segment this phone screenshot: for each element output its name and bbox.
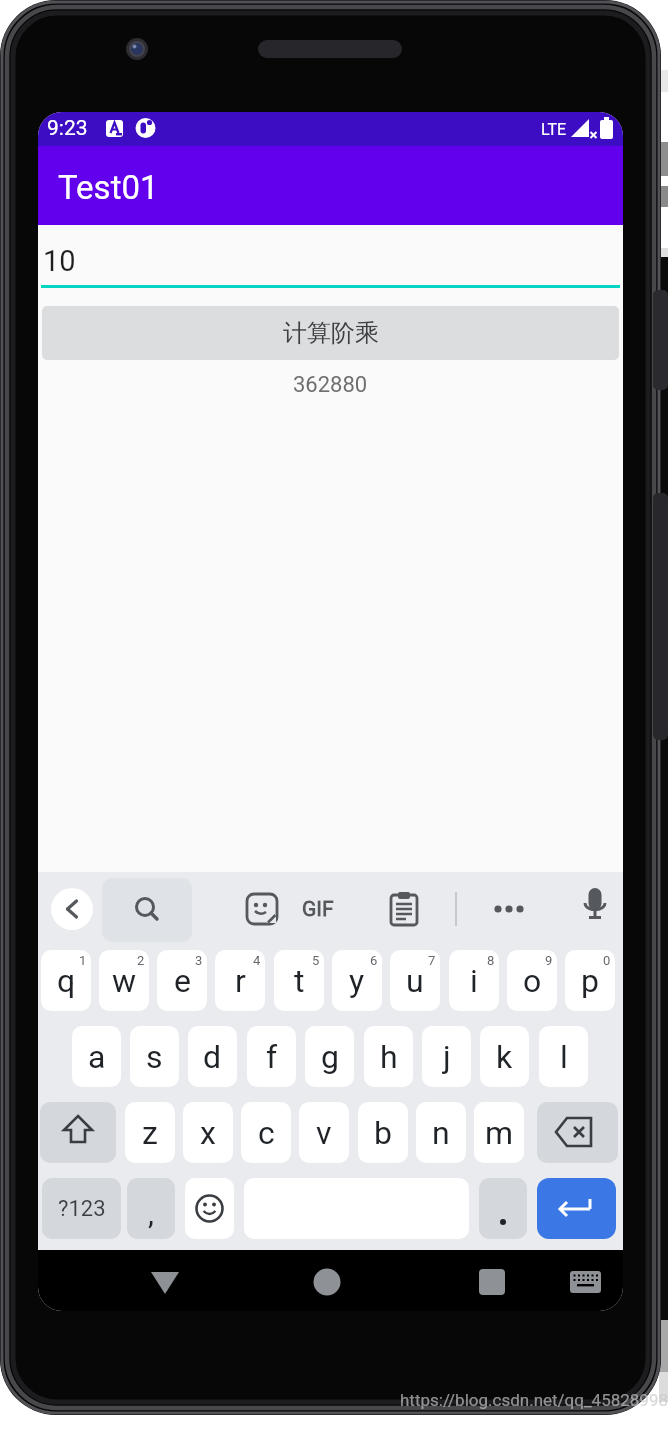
button[interactable] [385, 890, 423, 928]
button[interactable]: o [507, 950, 557, 1011]
button[interactable]: a [72, 1026, 121, 1087]
staticText: Test01 [58, 168, 159, 207]
staticText: p [581, 962, 599, 1000]
staticText: e [174, 962, 191, 1000]
button[interactable]: u [390, 950, 440, 1011]
button[interactable]: l [539, 1026, 588, 1087]
button[interactable]: g [305, 1026, 354, 1087]
staticText: a [88, 1038, 106, 1076]
button[interactable] [147, 1267, 183, 1297]
button[interactable]: GIF [293, 890, 343, 928]
staticText: c [258, 1114, 275, 1152]
staticText: 4 [253, 953, 261, 968]
staticText: , [148, 1196, 154, 1231]
staticText: 10 [43, 244, 76, 278]
staticText: o [523, 962, 542, 1000]
button[interactable] [474, 1267, 510, 1297]
staticText: k [496, 1038, 513, 1076]
staticText: 3 [195, 953, 203, 968]
staticText: t [294, 962, 305, 1000]
button[interactable]: h [364, 1026, 413, 1087]
button[interactable]: x [183, 1102, 233, 1163]
button[interactable]: j [422, 1026, 471, 1087]
staticText: w [112, 962, 137, 1000]
staticText: q [57, 962, 76, 1000]
button[interactable]: q [41, 950, 91, 1011]
button[interactable]: , [127, 1178, 175, 1239]
button[interactable] [309, 1267, 345, 1297]
button[interactable]: i [449, 950, 499, 1011]
staticText: j [443, 1038, 451, 1076]
staticText: 7 [428, 953, 436, 968]
button[interactable] [51, 888, 93, 930]
button[interactable] [575, 886, 615, 932]
staticText: f [266, 1038, 278, 1076]
staticText: s [146, 1038, 163, 1076]
button[interactable]: p [565, 950, 615, 1011]
staticText: 9 [545, 953, 553, 968]
staticText: i [470, 962, 478, 1000]
button[interactable]: m [474, 1102, 524, 1163]
staticText: m [485, 1114, 514, 1152]
button[interactable]: v [299, 1102, 349, 1163]
staticText: x [200, 1114, 216, 1152]
staticText: z [142, 1114, 158, 1152]
button[interactable]: s [130, 1026, 179, 1087]
staticText: LTE [541, 120, 567, 139]
staticText: 0 [603, 953, 611, 968]
button[interactable]: 计算阶乘 [42, 306, 619, 360]
staticText: d [203, 1038, 222, 1076]
staticText: h [380, 1038, 398, 1076]
button[interactable] [568, 1270, 604, 1296]
staticText: 1 [79, 953, 87, 968]
button[interactable] [243, 890, 281, 928]
button[interactable]: y [332, 950, 382, 1011]
staticText: l [560, 1038, 568, 1076]
staticText: ?123 [58, 1196, 106, 1222]
staticText: y [349, 962, 365, 1000]
staticText: n [432, 1114, 450, 1152]
staticText: b [374, 1114, 392, 1152]
staticText: u [406, 962, 424, 1000]
button[interactable]: t [274, 950, 324, 1011]
staticText: https://blog.csdn.net/qq_45828998 [400, 1390, 668, 1410]
button[interactable]: ?123 [42, 1178, 121, 1239]
staticText: 5 [312, 953, 320, 968]
staticText: g [321, 1038, 339, 1076]
staticText: 362880 [293, 372, 368, 398]
button[interactable]: r [215, 950, 265, 1011]
button[interactable] [537, 1102, 618, 1163]
staticText: r [235, 962, 246, 1000]
button[interactable]: c [241, 1102, 291, 1163]
button[interactable] [40, 1102, 116, 1163]
button[interactable]: e [157, 950, 207, 1011]
button[interactable] [185, 1178, 234, 1239]
button[interactable]: f [247, 1026, 296, 1087]
button[interactable]: k [480, 1026, 529, 1087]
button[interactable]: d [188, 1026, 237, 1087]
button[interactable]: w [99, 950, 149, 1011]
staticText: 9:23 [47, 116, 88, 141]
button[interactable] [479, 1178, 527, 1239]
button[interactable] [485, 890, 533, 928]
button[interactable]: n [416, 1102, 466, 1163]
button[interactable]: 10 [41, 232, 620, 288]
staticText: 6 [370, 953, 378, 968]
button[interactable]: z [125, 1102, 175, 1163]
staticText: 2 [137, 953, 145, 968]
button[interactable] [102, 878, 192, 942]
staticText: v [316, 1114, 332, 1152]
staticText: GIF [302, 897, 334, 922]
staticText: 计算阶乘 [283, 318, 379, 348]
button[interactable]: b [358, 1102, 408, 1163]
button[interactable] [537, 1178, 616, 1239]
staticText: 8 [487, 953, 495, 968]
